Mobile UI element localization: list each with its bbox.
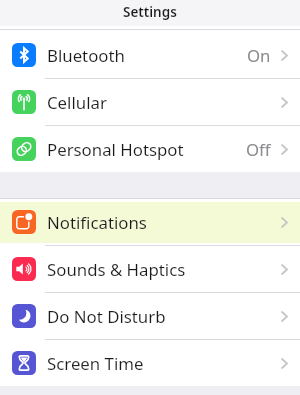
other: Open <box>281 264 288 275</box>
other: Open <box>281 97 288 108</box>
button[interactable]: Notifications <box>0 199 300 245</box>
staticText: Screen Time <box>47 352 144 375</box>
staticText: On <box>247 44 271 67</box>
staticText: Personal Hotspot <box>47 138 184 161</box>
button[interactable]: Sounds & Haptics <box>0 246 300 292</box>
button[interactable]: Screen Time <box>0 340 300 386</box>
other: Open <box>281 217 288 228</box>
button[interactable]: Do Not Disturb <box>0 293 300 339</box>
staticText: Cellular <box>47 91 107 114</box>
other: Notifications <box>12 210 36 234</box>
other: Open <box>281 358 288 369</box>
other: Personal Hotspot <box>12 137 36 161</box>
button[interactable]: Personal Hotspot <box>0 126 300 172</box>
staticText: Do Not Disturb <box>47 305 166 328</box>
other: Screen Time <box>12 351 36 375</box>
other: Open <box>281 50 288 61</box>
other: Bluetooth <box>12 43 36 67</box>
other: Open <box>281 311 288 322</box>
button[interactable]: Cellular <box>0 79 300 125</box>
staticText: Settings <box>123 3 177 21</box>
button[interactable]: Bluetooth <box>0 32 300 78</box>
other: Cellular <box>12 90 36 114</box>
other: Do Not Disturb <box>12 304 36 328</box>
staticText: Notifications <box>47 211 147 234</box>
staticText: Sounds & Haptics <box>47 258 186 281</box>
staticText: Bluetooth <box>47 44 125 67</box>
staticText: Off <box>246 138 271 161</box>
other: Open <box>281 144 288 155</box>
other: Sounds & Haptics <box>12 257 36 281</box>
